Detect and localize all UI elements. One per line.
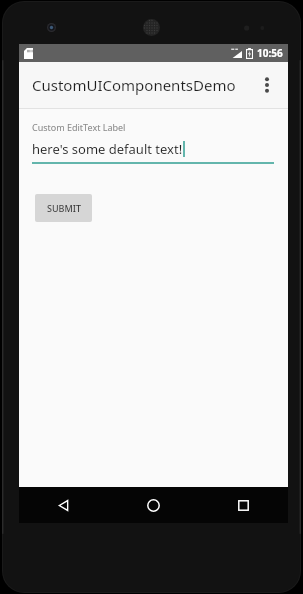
button[interactable]: Back	[19, 487, 108, 523]
button[interactable]: SUBMIT	[35, 194, 92, 222]
staticText: 10:56	[257, 46, 283, 60]
button[interactable]: here's some default text!	[32, 140, 274, 164]
button[interactable]: More options	[249, 67, 285, 103]
staticText: CustomUIComponentsDemo	[32, 75, 236, 95]
button[interactable]: Home	[108, 487, 198, 523]
staticText: Custom EditText Label	[32, 121, 126, 133]
staticText: here's some default text!	[32, 140, 183, 158]
staticText: SUBMIT	[47, 202, 81, 214]
button[interactable]: Recent apps	[198, 487, 288, 523]
